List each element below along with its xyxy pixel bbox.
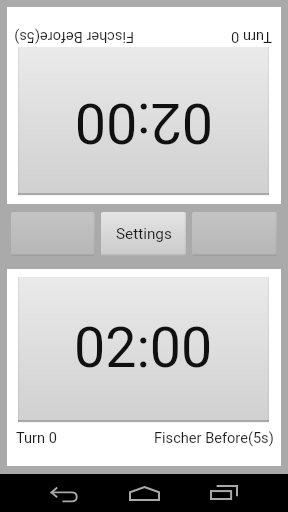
staticText: Settings bbox=[116, 225, 172, 243]
button[interactable] bbox=[192, 212, 277, 256]
button[interactable]: 02:00 bbox=[7, 269, 281, 466]
button[interactable] bbox=[11, 212, 95, 256]
staticText: 02:00 bbox=[74, 90, 213, 155]
staticText: Fischer Before(5s) bbox=[154, 429, 274, 446]
button[interactable]: Settings bbox=[101, 212, 186, 256]
button[interactable]: Back bbox=[24, 474, 104, 512]
button[interactable]: Home bbox=[104, 474, 184, 512]
staticText: Fischer Before(5s) bbox=[14, 29, 134, 46]
staticText: Turn 0 bbox=[231, 29, 272, 46]
staticText: Turn 0 bbox=[16, 429, 57, 446]
staticText: 02:00 bbox=[74, 316, 213, 381]
button[interactable]: Recent apps bbox=[184, 474, 264, 512]
button[interactable]: 02:00 bbox=[7, 7, 281, 204]
